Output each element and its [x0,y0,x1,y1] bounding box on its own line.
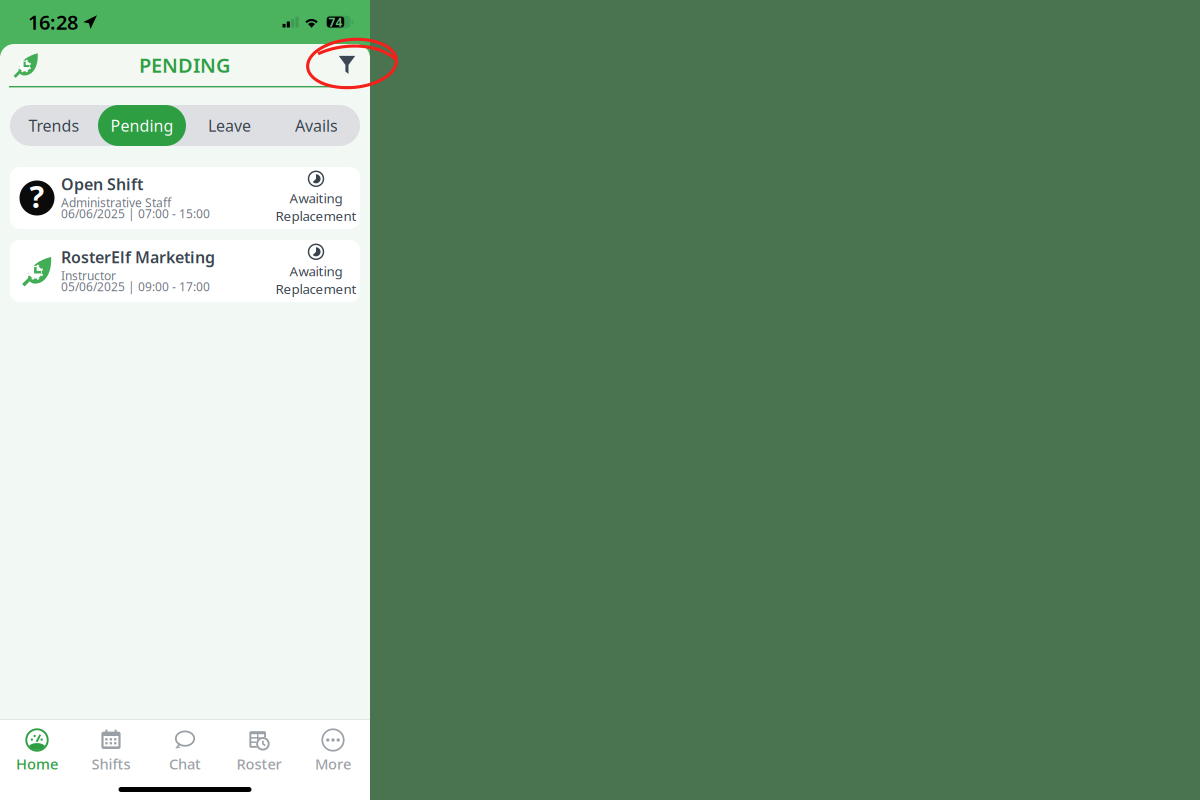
button[interactable]: Pending [98,105,186,146]
staticText: PENDING [139,52,231,78]
staticText: Awaiting [289,189,342,207]
staticText: Replacement [275,280,356,298]
button[interactable]: Home [0,729,74,775]
button[interactable]: RosterElf Marketing [10,240,360,302]
staticText: 06/06/2025 | 07:00 - 15:00 [61,205,210,221]
staticText: Open Shift [61,173,143,195]
staticText: Pending [110,115,173,136]
staticText: 16:28 [28,9,78,35]
staticText: Awaiting [289,262,342,280]
staticText: Instructor [61,267,116,283]
button[interactable]: Shifts [74,729,148,775]
button[interactable]: More [296,729,370,775]
button[interactable]: Trends [10,105,98,146]
button[interactable]: ? [10,167,360,229]
staticText: RosterElf Marketing [61,246,215,268]
staticText: Avails [295,115,338,136]
button[interactable]: Roster [222,729,296,775]
staticText: Shifts [91,754,130,773]
staticText: 74 [328,14,342,30]
staticText: Leave [208,115,251,136]
staticText: 05/06/2025 | 09:00 - 17:00 [61,278,210,294]
button[interactable]: Avails [273,105,360,146]
button[interactable]: Chat [148,729,222,775]
button[interactable]: Leave [186,105,273,146]
staticText: Trends [28,115,79,136]
staticText: Roster [236,754,281,773]
staticText: Home [16,754,58,773]
button[interactable]: Filter [324,44,370,86]
staticText: Administrative Staff [61,194,171,210]
staticText: ? [29,176,44,216]
button[interactable]: RosterElf [3,44,49,86]
staticText: Replacement [275,207,356,225]
staticText: More [315,754,351,773]
staticText: Chat [169,754,201,773]
